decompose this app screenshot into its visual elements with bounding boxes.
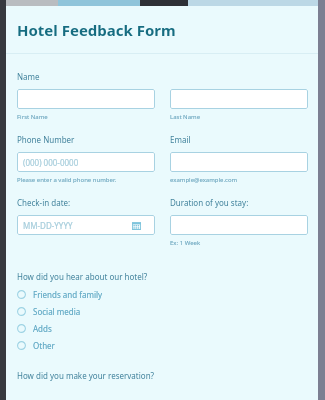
staticText: Duration of you stay: [170,197,249,208]
staticText: Friends and family [33,289,103,300]
staticText: Ex: 1 Week [170,239,201,247]
staticText: Email [170,134,191,145]
staticText: (000) 000-0000 [23,157,79,168]
button[interactable]: Adds [17,320,318,337]
staticText: example@example.com [170,176,238,184]
staticText: First Name [17,113,48,121]
staticText: Check-in date: [17,197,71,208]
button[interactable]: Phone number [17,152,155,172]
staticText: Social media [33,306,81,317]
staticText: Adds [33,323,52,334]
button[interactable]: Social media [17,303,318,320]
staticText: MM-DD-YYYY [23,220,73,231]
staticText: Hotel Feedback Form [17,20,176,40]
staticText: Last Name [170,113,201,121]
button[interactable]: Last name [170,89,308,109]
staticText: Other [33,340,55,351]
button[interactable]: First name [17,89,155,109]
staticText: Please enter a valid phone number. [17,176,117,184]
staticText: Phone Number [17,134,75,145]
button[interactable]: Other [17,337,318,354]
button[interactable]: Check-in date [17,215,155,235]
button[interactable]: Duration of stay [170,215,308,235]
staticText: Name [17,71,40,82]
staticText: How did you make your reservation? [17,370,155,381]
button[interactable]: Email [170,152,308,172]
button[interactable]: Friends and family [17,286,318,303]
staticText: How did you hear about our hotel? [17,271,148,282]
